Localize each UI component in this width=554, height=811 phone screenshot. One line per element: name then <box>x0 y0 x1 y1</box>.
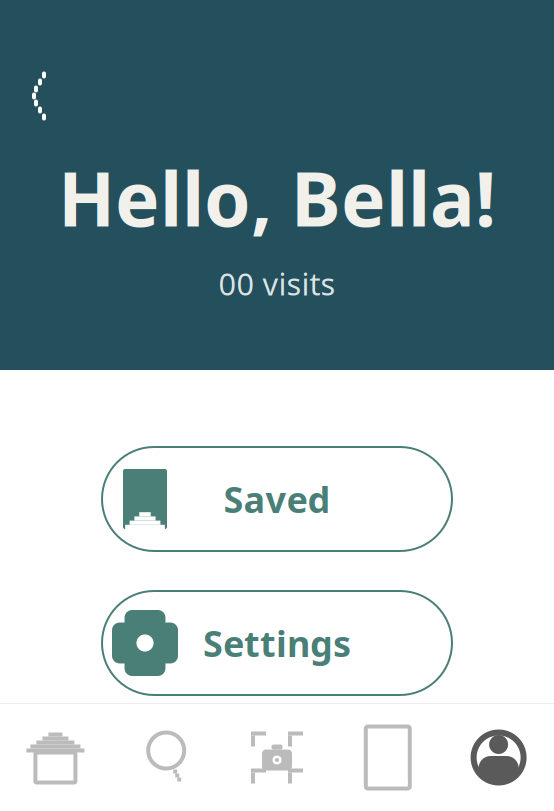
button[interactable]: Scan <box>222 704 332 810</box>
staticText: Saved <box>223 475 330 523</box>
button[interactable]: Back <box>8 68 64 124</box>
staticText: Settings <box>203 619 351 667</box>
staticText: 00 visits <box>218 263 335 304</box>
button[interactable]: Search <box>111 704 222 810</box>
button[interactable]: Saved <box>332 704 443 810</box>
button[interactable]: Profile <box>443 704 554 810</box>
button[interactable]: Saved <box>102 447 452 551</box>
button[interactable]: Home <box>0 704 111 810</box>
button[interactable]: Settings <box>102 591 452 695</box>
staticText: Hello, Bella! <box>58 148 496 247</box>
